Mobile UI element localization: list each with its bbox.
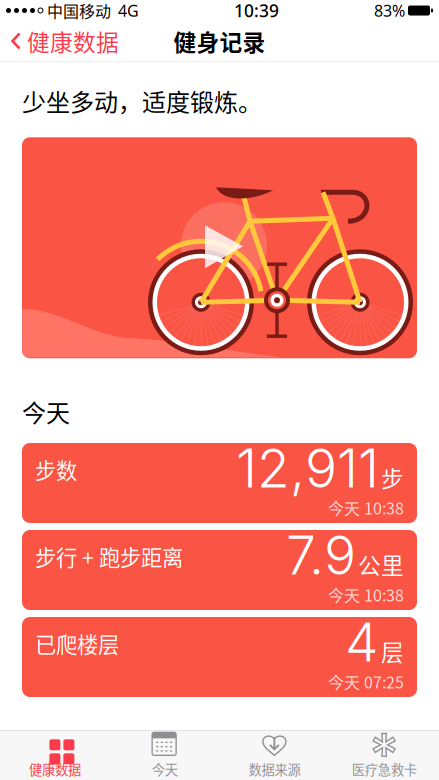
staticText: 步行 + 跑步距离 (35, 541, 183, 572)
staticText: 医疗急救卡 (352, 759, 417, 779)
staticText: 今天 10:38 (328, 583, 404, 606)
staticText: 今天 (152, 759, 178, 779)
staticText: 今天 10:38 (328, 496, 404, 519)
staticText: 10:39 (234, 0, 279, 22)
staticText: 公里 (358, 548, 404, 580)
staticText: 健康数据 (27, 25, 119, 57)
button[interactable]: 数据来源 (219, 731, 329, 780)
staticText: 4 (345, 610, 379, 674)
staticText: 少坐多动，适度锻炼。 (22, 83, 262, 118)
button[interactable]: 步数 (22, 443, 417, 523)
button[interactable]: 步行 + 跑步距离 (22, 530, 417, 610)
staticText: 12,911 (236, 436, 379, 500)
staticText: 步数 (35, 454, 77, 485)
staticText: 4G (118, 0, 139, 21)
staticText: 健康数据 (29, 759, 81, 779)
staticText: 数据来源 (248, 759, 300, 779)
staticText: 7.9 (286, 523, 356, 587)
button[interactable]: 今天 (110, 731, 220, 780)
button[interactable]: 已爬楼层 (22, 617, 417, 697)
staticText: 今天 07:25 (328, 670, 404, 693)
staticText: 步 (381, 461, 404, 493)
staticText: 83% (374, 0, 405, 21)
staticText: 中国移动 (47, 0, 111, 22)
staticText: 健身记录 (173, 25, 265, 57)
staticText: 已爬楼层 (35, 628, 119, 659)
button[interactable]: 健康数据 (0, 731, 110, 780)
button[interactable]: 医疗急救卡 (329, 731, 439, 780)
staticText: 今天 (22, 394, 70, 429)
staticText: 层 (381, 635, 404, 667)
button[interactable]: 健康数据 (0, 21, 127, 61)
